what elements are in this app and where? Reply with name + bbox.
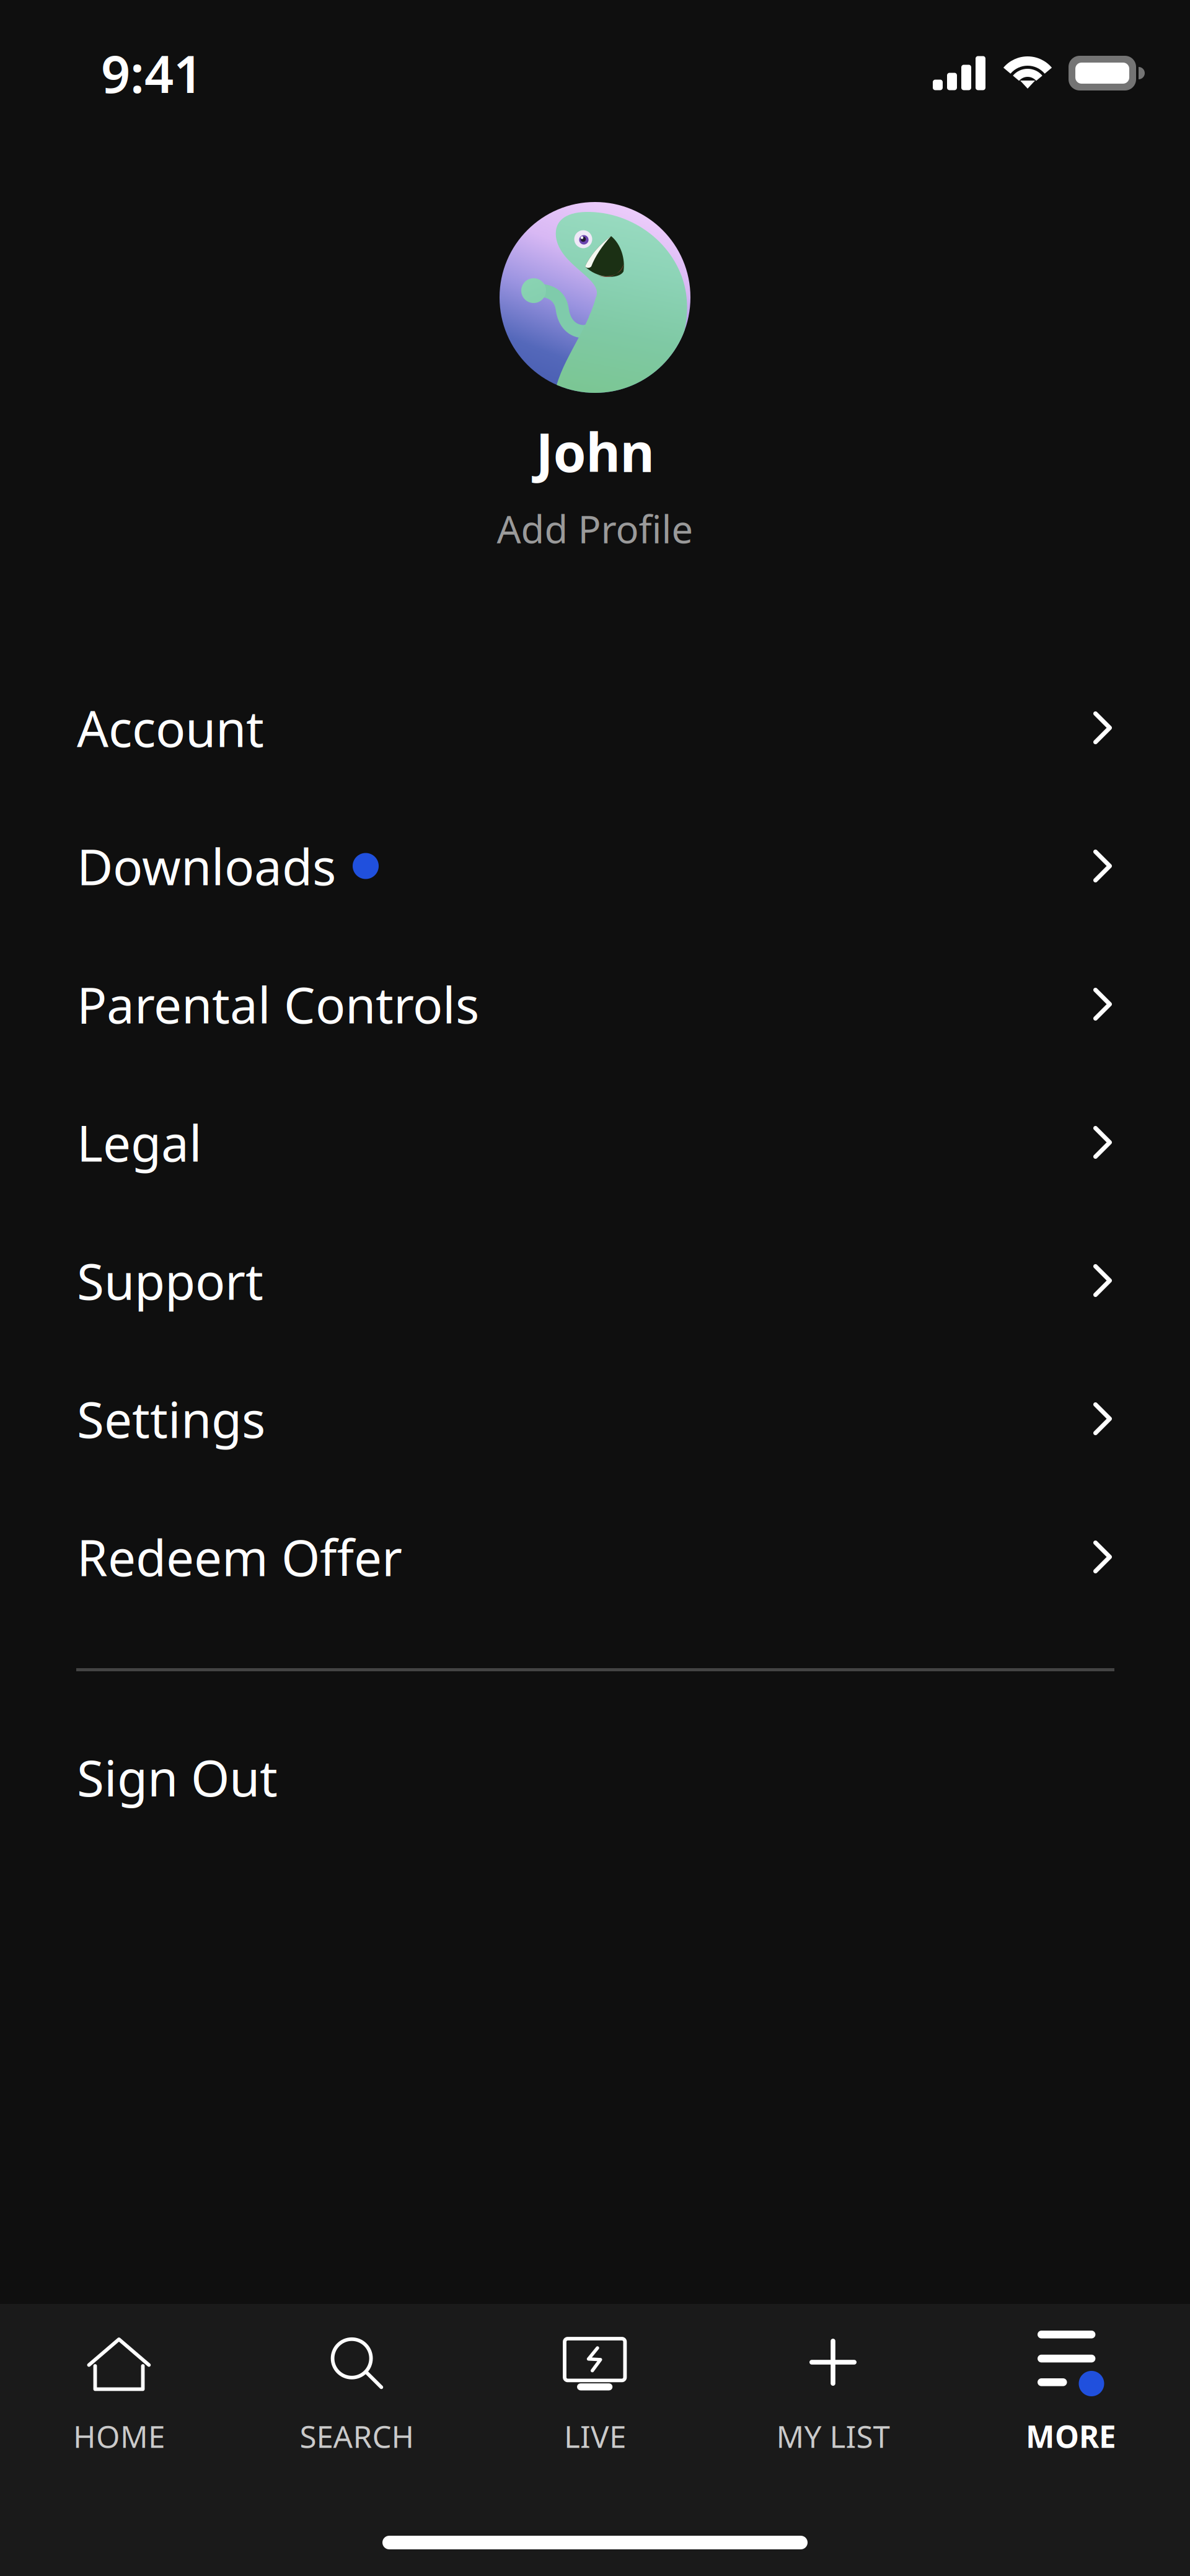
staticText: Redeem Offer [77,1524,402,1590]
staticText: SEARCH [300,2416,414,2456]
button[interactable]: Account [0,659,1190,797]
button[interactable]: Legal [0,1073,1190,1211]
staticText: John [536,416,654,487]
button[interactable]: MY LIST [714,2304,952,2576]
button[interactable]: MORE [952,2304,1190,2576]
button[interactable]: LIVE [476,2304,714,2576]
staticText: Settings [77,1386,265,1452]
button[interactable]: Redeem Offer [0,1488,1190,1626]
button[interactable]: Downloads [0,797,1190,935]
staticText: LIVE [564,2416,626,2456]
staticText: Add Profile [497,503,693,554]
button[interactable]: John [0,202,1190,487]
staticText: Downloads [77,833,336,899]
staticText: HOME [73,2416,165,2456]
button[interactable]: Support [0,1211,1190,1350]
staticText: MY LIST [776,2416,890,2456]
button[interactable]: Sign Out [0,1731,1190,1824]
staticText: 9:41 [101,39,203,107]
staticText: MORE [1026,2416,1116,2456]
button[interactable]: Add Profile [0,495,1190,563]
staticText: Support [77,1248,263,1313]
button[interactable]: Settings [0,1350,1190,1488]
staticText: Legal [77,1109,202,1175]
staticText: Parental Controls [77,971,479,1037]
staticText: Account [77,695,264,761]
button[interactable]: SEARCH [238,2304,476,2576]
button[interactable]: HOME [0,2304,238,2576]
staticText: Sign Out [77,1744,278,1810]
button[interactable]: Parental Controls [0,935,1190,1073]
